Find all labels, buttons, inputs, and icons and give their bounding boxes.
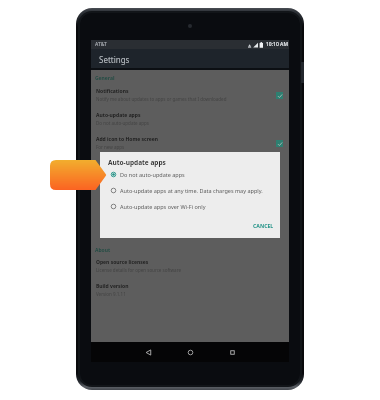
button[interactable]: Auto-update apps over Wi-Fi only [110, 201, 290, 212]
staticText: Version 9.1.11 [96, 291, 126, 297]
button[interactable]: Add icon to Home screen [91, 133, 289, 153]
staticText: Auto-update apps at any time. Data charg… [120, 187, 263, 194]
staticText: About [95, 247, 111, 254]
staticText: Settings [99, 54, 130, 65]
staticText: General [95, 75, 115, 82]
staticText: AT&T [95, 41, 107, 48]
staticText: Notify me about updates to apps or games… [96, 96, 227, 102]
staticText: Do not auto-update apps [120, 171, 185, 178]
staticText: Notifications [96, 88, 129, 95]
staticText: Build version [96, 283, 129, 290]
button[interactable]: Do not auto-update apps [110, 169, 290, 180]
staticText: Open source licenses [96, 259, 149, 266]
button[interactable]: Recent apps [223, 343, 241, 361]
button[interactable]: Build version [91, 280, 289, 300]
button[interactable]: Notifications [91, 85, 289, 105]
staticText: Auto-update apps over Wi-Fi only [120, 203, 206, 210]
staticText: Auto-update apps [96, 112, 141, 119]
button[interactable]: Auto-update apps [91, 109, 289, 129]
button[interactable]: Back [139, 343, 157, 361]
button[interactable]: Auto-update apps at any time. Data charg… [110, 185, 290, 196]
button[interactable]: Home [181, 343, 199, 361]
staticText: Do not auto-update apps [96, 120, 149, 126]
staticText: Auto-update apps [108, 158, 166, 167]
staticText: Add icon to Home screen [96, 136, 158, 143]
button[interactable]: Open source licenses [91, 256, 289, 276]
staticText: License details for open source software [96, 267, 181, 273]
staticText: For new apps [96, 144, 125, 150]
button[interactable]: Callout pointer [50, 160, 107, 190]
button[interactable]: CANCEL [251, 220, 276, 231]
staticText: 10:10 AM [266, 41, 288, 48]
